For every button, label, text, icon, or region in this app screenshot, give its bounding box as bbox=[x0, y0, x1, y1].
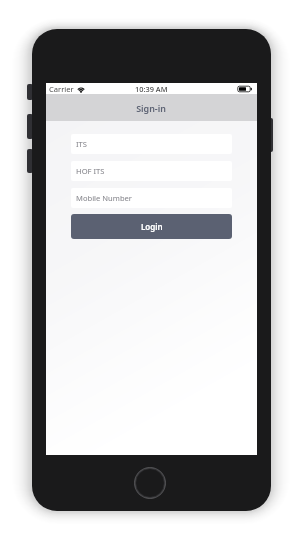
button[interactable]: Login bbox=[71, 214, 232, 239]
staticText: Mobile Number bbox=[76, 193, 132, 203]
staticText: Login bbox=[141, 221, 163, 232]
other: Wi-Fi signal bbox=[77, 86, 85, 93]
button[interactable]: HOF ITS bbox=[71, 161, 232, 181]
button[interactable]: ITS bbox=[71, 134, 232, 154]
button[interactable]: Mobile Number bbox=[71, 188, 232, 208]
staticText: ITS bbox=[76, 139, 87, 149]
staticText: HOF ITS bbox=[76, 166, 105, 176]
button[interactable]: Power bbox=[268, 118, 273, 152]
button[interactable]: Volume down bbox=[27, 149, 33, 173]
staticText: Carrier bbox=[49, 84, 74, 94]
button[interactable]: Silent switch bbox=[27, 84, 33, 100]
staticText: 10:39 AM bbox=[135, 84, 168, 94]
staticText: Sign-in bbox=[136, 102, 166, 114]
button[interactable]: Home bbox=[134, 467, 166, 499]
other: Battery 55 percent bbox=[237, 85, 252, 93]
button[interactable]: Volume up bbox=[27, 114, 33, 139]
